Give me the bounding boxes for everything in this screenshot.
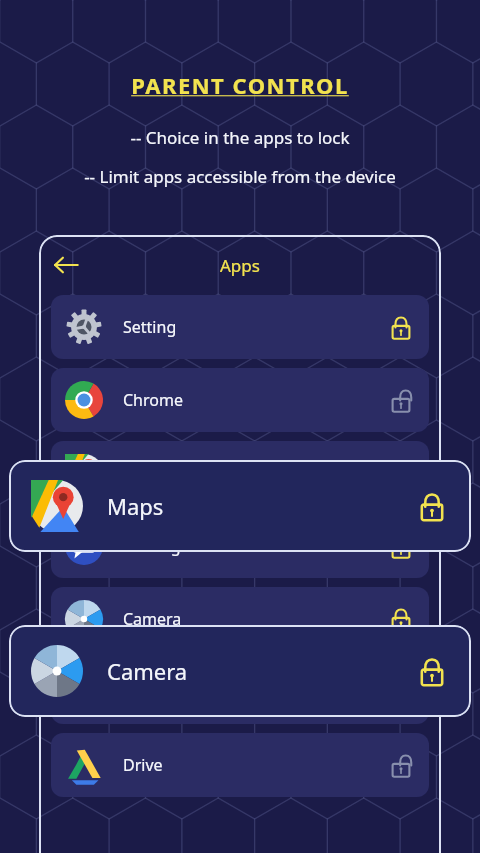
button[interactable]: Setting — [51, 295, 429, 359]
button[interactable]: Camera — [51, 587, 429, 651]
staticText: -- Choice in the apps to lock — [130, 126, 350, 149]
staticText: Maps — [107, 491, 164, 521]
staticText: PARENT CONTROL — [131, 70, 349, 100]
button[interactable]: Maps — [9, 460, 471, 552]
button[interactable]: Maps — [51, 441, 429, 505]
button[interactable]: Contact — [51, 660, 429, 724]
staticText: Camera — [107, 656, 188, 686]
staticText: Chrome — [123, 389, 183, 411]
staticText: Apps — [220, 254, 260, 277]
button[interactable]: Camera — [9, 625, 471, 717]
staticText: Camera — [123, 608, 182, 630]
button[interactable]: Drive — [51, 733, 429, 797]
button[interactable]: Message — [51, 514, 429, 578]
staticText: Drive — [123, 754, 163, 776]
button[interactable]: Back — [45, 244, 87, 286]
button[interactable]: Chrome — [51, 368, 429, 432]
staticText: -- Limit apps accessible from the device — [84, 165, 396, 188]
staticText: Setting — [123, 316, 177, 338]
staticText: Message — [123, 535, 190, 557]
